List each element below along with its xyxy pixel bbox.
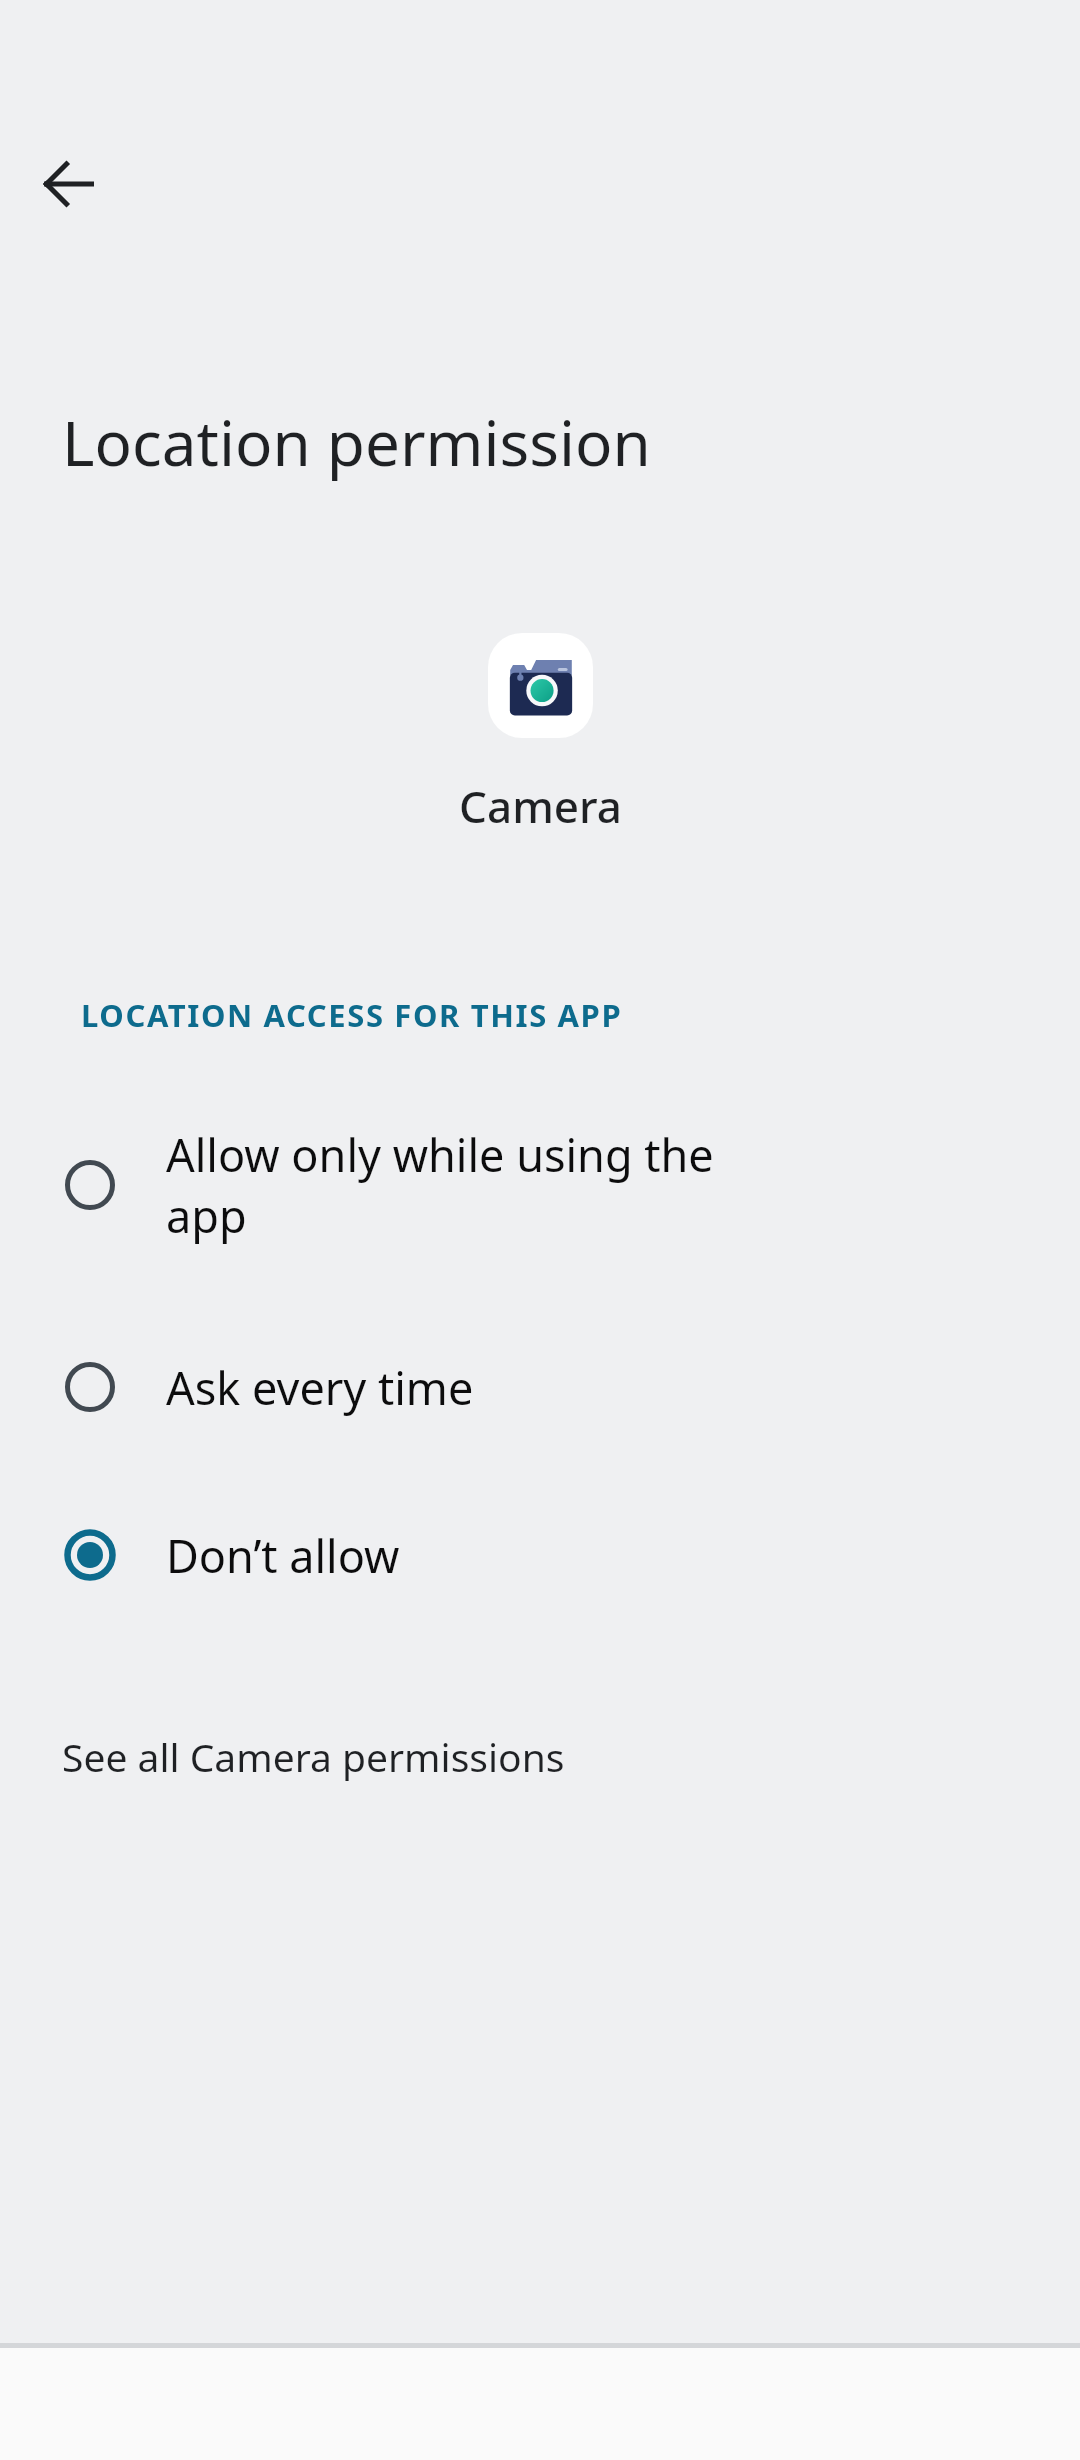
staticText: Don’t allow [166,1525,400,1586]
button[interactable]: Back [21,136,117,232]
button[interactable]: See all Camera permissions [0,1710,1080,1802]
staticText: LOCATION ACCESS FOR THIS APP [81,994,623,1036]
staticText: Camera [459,776,622,836]
staticText: Allow only while using the [166,1124,714,1185]
staticText: app [166,1185,247,1246]
button[interactable]: Ask every time [0,1322,1080,1452]
staticText: Ask every time [166,1357,474,1418]
button[interactable]: Don’t allow [0,1490,1080,1620]
staticText: See all Camera permissions [62,1730,565,1783]
staticText: Location permission [62,400,651,484]
button[interactable]: Allow only while using the [0,1100,1080,1270]
